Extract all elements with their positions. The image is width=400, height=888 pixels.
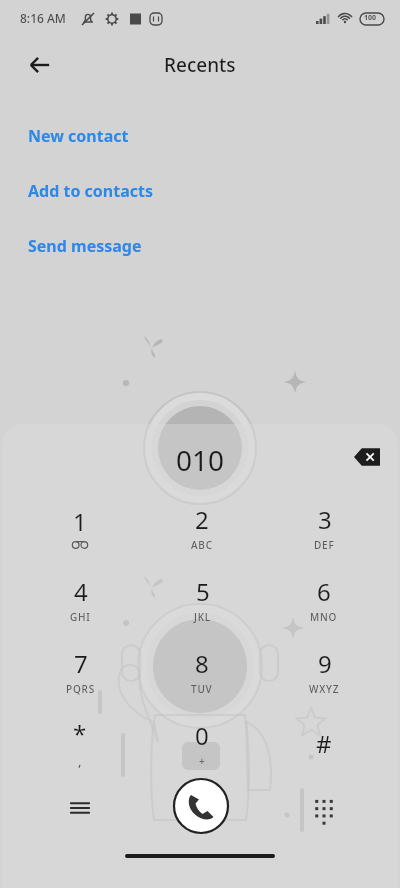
staticText: 010 (2, 441, 398, 479)
staticText: 7 (74, 647, 88, 680)
staticText: 8 (195, 647, 209, 680)
button[interactable]: Call (172, 777, 230, 835)
staticText: Send message (28, 235, 142, 257)
staticText: 3 (318, 503, 332, 536)
staticText: MNO (310, 610, 338, 624)
staticText: 4 (74, 575, 88, 608)
button[interactable]: 5 (144, 564, 260, 634)
staticText: # (316, 727, 332, 760)
button[interactable]: 2 (144, 492, 260, 562)
staticText: ABC (191, 538, 213, 552)
button[interactable]: 1 (22, 492, 138, 562)
button[interactable]: # (266, 708, 382, 778)
button[interactable]: 8 (144, 636, 260, 706)
staticText: + (199, 754, 206, 768)
staticText: 2 (195, 503, 209, 536)
button[interactable]: Back (16, 42, 64, 88)
button[interactable]: New contact (0, 108, 400, 163)
staticText: 100 (364, 13, 377, 23)
button[interactable]: Menu (54, 782, 106, 834)
staticText: 5 (196, 575, 210, 608)
button[interactable]: 3 (266, 492, 382, 562)
staticText: WXYZ (309, 682, 340, 696)
button[interactable]: Backspace (344, 434, 390, 480)
button[interactable]: Dialpad (298, 782, 350, 834)
button[interactable]: 6 (266, 564, 382, 634)
button[interactable]: 0 (144, 708, 260, 778)
staticText: 8:16 AM (20, 10, 66, 26)
staticText: 1 (73, 505, 87, 538)
button[interactable]: * (22, 708, 138, 778)
button[interactable]: Send message (0, 218, 400, 273)
button[interactable]: 4 (22, 564, 138, 634)
staticText: DEF (314, 538, 335, 552)
staticText: JKL (194, 610, 211, 624)
staticText: 9 (318, 647, 332, 680)
staticText: * (73, 717, 87, 750)
button[interactable]: 7 (22, 636, 138, 706)
staticText: PQRS (66, 682, 95, 696)
button[interactable]: 9 (266, 636, 382, 706)
staticText: , (78, 752, 83, 770)
staticText: 6 (317, 575, 331, 608)
staticText: TUV (191, 682, 213, 696)
button[interactable]: Add to contacts (0, 163, 400, 218)
staticText: 0 (195, 719, 209, 752)
staticText: New contact (28, 125, 129, 147)
staticText: Recents (164, 52, 236, 78)
staticText: GHI (70, 610, 91, 624)
staticText: Add to contacts (28, 180, 153, 202)
